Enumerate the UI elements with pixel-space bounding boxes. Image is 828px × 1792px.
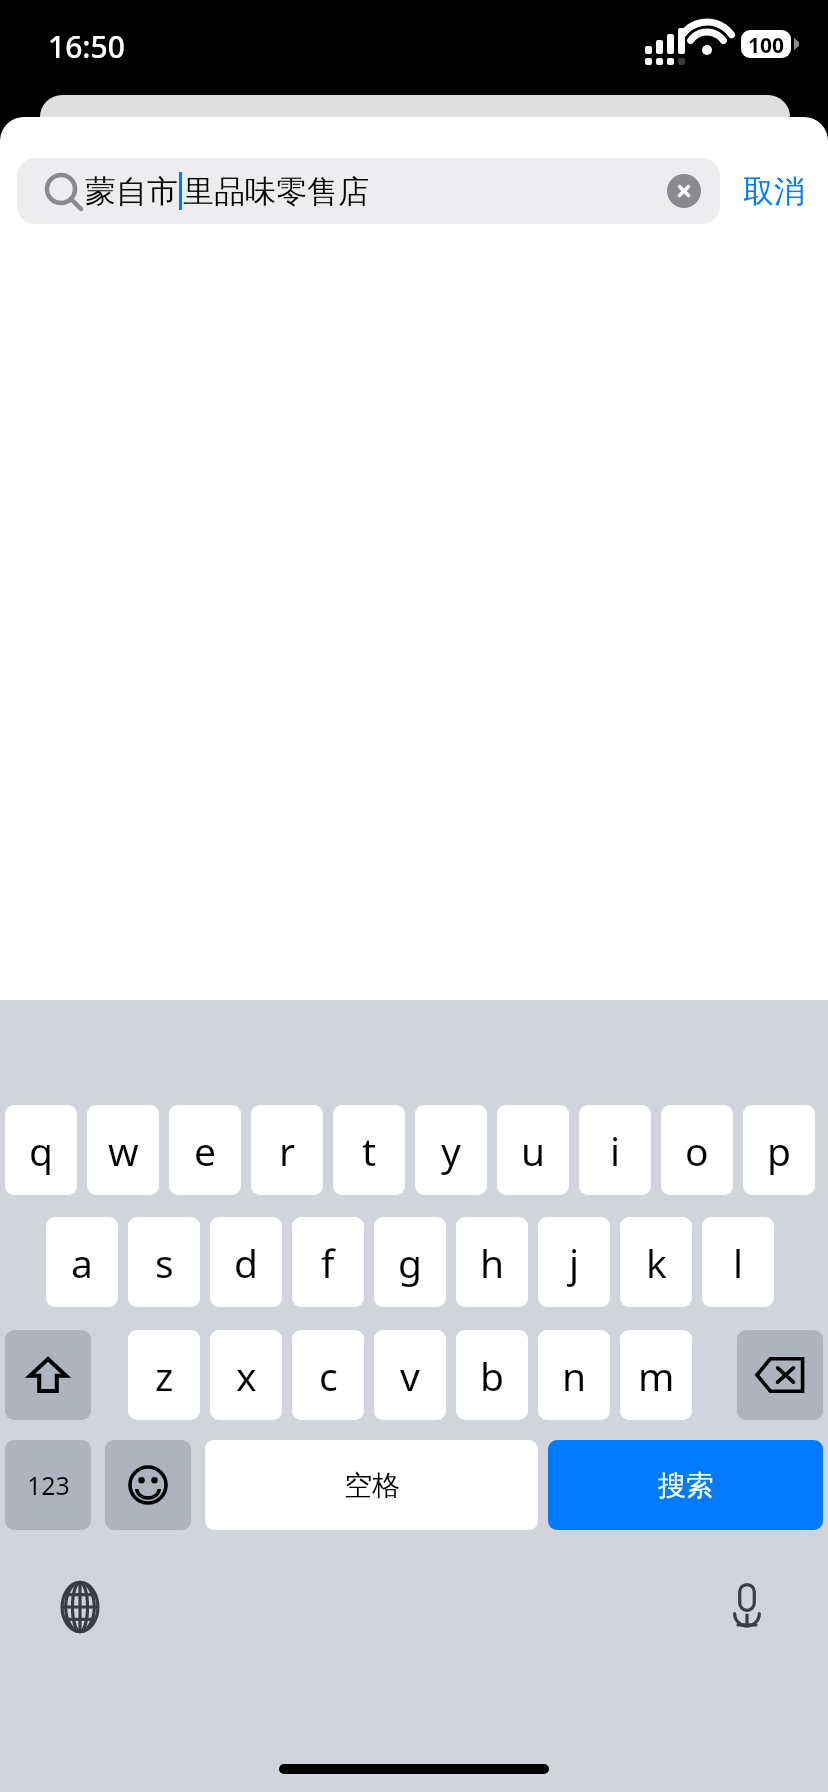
staticText: 搜索 (658, 1468, 714, 1503)
button[interactable]: l (702, 1217, 774, 1307)
staticText: u (521, 1124, 546, 1177)
staticText: q (29, 1124, 53, 1177)
staticText: e (194, 1124, 216, 1177)
button[interactable]: j (538, 1217, 610, 1307)
staticText: d (234, 1236, 258, 1289)
staticText: h (480, 1236, 505, 1289)
staticText: l (733, 1236, 744, 1289)
button[interactable]: Clear text (667, 174, 701, 208)
button[interactable]: u (497, 1105, 569, 1195)
staticText: k (646, 1236, 667, 1289)
button[interactable]: 搜索 (548, 1440, 823, 1530)
staticText: 16:50 (48, 26, 125, 67)
button[interactable]: e (169, 1105, 241, 1195)
button[interactable]: f (292, 1217, 364, 1307)
button[interactable]: b (456, 1330, 528, 1420)
button[interactable]: o (661, 1105, 733, 1195)
button[interactable]: Switch keyboard language (48, 1575, 112, 1639)
button[interactable]: i (579, 1105, 651, 1195)
button[interactable]: k (620, 1217, 692, 1307)
staticText: 100 (745, 31, 787, 60)
staticText: o (685, 1124, 709, 1177)
button[interactable]: y (415, 1105, 487, 1195)
staticText: v (400, 1349, 420, 1402)
button[interactable]: t (333, 1105, 405, 1195)
button[interactable]: n (538, 1330, 610, 1420)
staticText: m (638, 1349, 675, 1402)
staticText: 取消 (743, 172, 805, 211)
button[interactable]: g (374, 1217, 446, 1307)
button[interactable]: a (46, 1217, 118, 1307)
staticText: g (398, 1236, 422, 1289)
staticText: 蒙自市 (85, 172, 178, 211)
button[interactable]: w (87, 1105, 159, 1195)
staticText: c (319, 1349, 338, 1402)
staticText: a (71, 1236, 93, 1289)
button[interactable]: h (456, 1217, 528, 1307)
button[interactable]: m (620, 1330, 692, 1420)
staticText: w (108, 1124, 139, 1177)
staticText: f (321, 1236, 335, 1289)
staticText: 123 (27, 1468, 70, 1502)
button[interactable]: Emoji (105, 1440, 191, 1530)
staticText: r (279, 1124, 296, 1177)
button[interactable]: q (5, 1105, 77, 1195)
staticText: b (480, 1349, 504, 1402)
staticText: j (569, 1236, 580, 1289)
button[interactable]: s (128, 1217, 200, 1307)
button[interactable]: 蒙自市 (17, 158, 720, 224)
staticText: n (562, 1349, 587, 1402)
button[interactable]: Shift (5, 1330, 91, 1420)
button[interactable]: r (251, 1105, 323, 1195)
staticText: z (155, 1349, 174, 1402)
staticText: 里品味零售店 (183, 172, 369, 211)
staticText: x (236, 1349, 257, 1402)
staticText: y (441, 1124, 461, 1177)
button[interactable]: 123 (5, 1440, 91, 1530)
button[interactable]: p (743, 1105, 815, 1195)
button[interactable]: Backspace (737, 1330, 823, 1420)
button[interactable]: v (374, 1330, 446, 1420)
button[interactable]: 取消 (728, 158, 820, 224)
staticText: i (610, 1124, 621, 1177)
button[interactable]: z (128, 1330, 200, 1420)
button[interactable]: d (210, 1217, 282, 1307)
button[interactable]: Dictate (715, 1575, 779, 1639)
staticText: p (767, 1124, 791, 1177)
staticText: t (362, 1124, 377, 1177)
button[interactable]: c (292, 1330, 364, 1420)
staticText: 空格 (344, 1468, 400, 1503)
button[interactable]: 空格 (205, 1440, 538, 1530)
staticText: s (155, 1236, 174, 1289)
button[interactable]: x (210, 1330, 282, 1420)
